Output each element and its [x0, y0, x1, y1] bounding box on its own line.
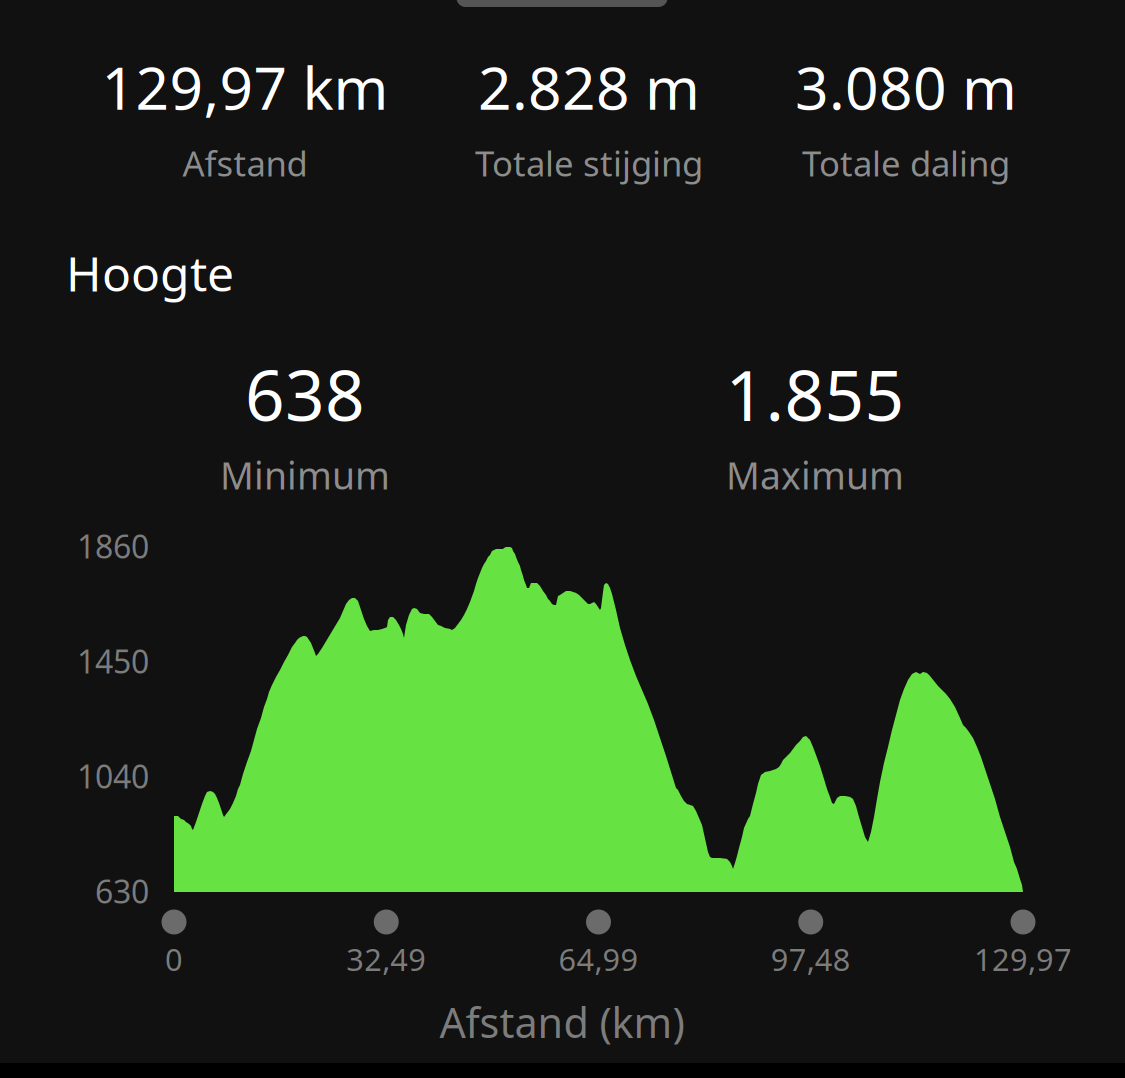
- button[interactable]: Waypoint at 0 km: [161, 909, 186, 934]
- button[interactable]: Waypoint at 129,97 km: [1010, 909, 1035, 934]
- staticText: 630: [95, 870, 149, 912]
- staticText: 2.828 m: [478, 48, 700, 126]
- button[interactable]: 1.855: [725, 348, 904, 500]
- staticText: Totale stijging: [475, 140, 703, 186]
- staticText: 3.080 m: [795, 48, 1017, 126]
- staticText: 1040: [77, 755, 149, 797]
- staticText: Hoogte: [66, 241, 234, 305]
- button[interactable]: 3.080 m: [795, 48, 1017, 186]
- button[interactable]: 2.828 m: [475, 48, 703, 186]
- staticText: Totale daling: [802, 140, 1010, 186]
- staticText: 129,97: [974, 939, 1072, 979]
- staticText: 638: [245, 348, 365, 440]
- staticText: Maximum: [726, 450, 904, 500]
- staticText: 97,48: [771, 939, 851, 979]
- staticText: 1.855: [725, 348, 904, 440]
- staticText: 129,97 km: [101, 48, 388, 126]
- staticText: Afstand (km): [439, 995, 684, 1049]
- button[interactable]: 638: [220, 348, 390, 500]
- button[interactable]: Waypoint at 64,99 km: [586, 909, 611, 934]
- button[interactable]: Elevation profile chart: [174, 530, 1023, 892]
- staticText: 32,49: [346, 939, 426, 979]
- staticText: Minimum: [220, 450, 390, 500]
- staticText: 64,99: [558, 939, 638, 979]
- staticText: 1450: [77, 640, 149, 682]
- button[interactable]: Waypoint at 97,48 km: [798, 909, 823, 934]
- staticText: Afstand: [182, 140, 307, 186]
- staticText: 0: [165, 939, 183, 979]
- button[interactable]: Sheet grabber: [456, 0, 667, 7]
- staticText: 1860: [77, 525, 149, 567]
- button[interactable]: Waypoint at 32,49 km: [374, 909, 399, 934]
- button[interactable]: 129,97 km: [101, 48, 388, 186]
